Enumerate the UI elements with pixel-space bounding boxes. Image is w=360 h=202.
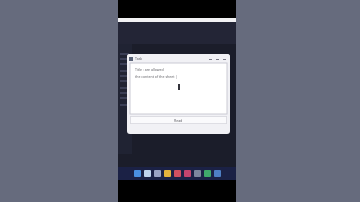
button[interactable]: Editor	[174, 170, 181, 177]
button[interactable]: Terminal	[194, 170, 201, 177]
button[interactable]: Read	[130, 116, 227, 124]
button[interactable]: Search	[144, 170, 151, 177]
button[interactable]: Maximize	[214, 55, 221, 63]
button[interactable]: Start	[134, 170, 141, 177]
button[interactable]: Settings	[214, 170, 221, 177]
staticText: Task	[135, 56, 143, 61]
button[interactable]: Minimize	[207, 55, 214, 63]
button[interactable]: Task view	[154, 170, 161, 177]
button[interactable]: Browser	[184, 170, 191, 177]
staticText: the content of the sheet |	[135, 74, 178, 79]
button[interactable]: File Explorer	[164, 170, 171, 177]
staticText: Read	[174, 118, 183, 123]
staticText: Title : are allowed	[135, 67, 164, 72]
button[interactable]: Mail	[204, 170, 211, 177]
button[interactable]: Close	[221, 55, 228, 63]
